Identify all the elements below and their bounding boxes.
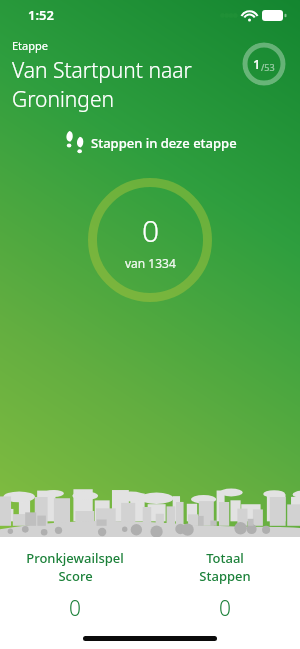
- staticText: 0: [69, 594, 81, 623]
- staticText: Stappen: [199, 567, 251, 585]
- staticText: Groningen: [12, 85, 114, 114]
- staticText: Totaal: [206, 549, 244, 567]
- staticText: 1:52: [28, 6, 54, 24]
- button[interactable]: Etappe 1 van 53: [242, 42, 286, 86]
- staticText: van 1334: [125, 255, 176, 271]
- button[interactable]: Totaal: [150, 549, 300, 623]
- staticText: /53: [261, 61, 275, 73]
- staticText: Etappe: [12, 38, 48, 53]
- staticText: Score: [58, 567, 93, 585]
- staticText: Stappen in deze etappe: [91, 134, 237, 152]
- staticText: 1: [253, 55, 261, 73]
- staticText: 0: [142, 210, 160, 251]
- staticText: Van Startpunt naar: [12, 56, 192, 85]
- staticText: Pronkjewailspel: [26, 549, 124, 567]
- staticText: 0: [219, 594, 231, 623]
- button[interactable]: Pronkjewailspel: [0, 549, 150, 623]
